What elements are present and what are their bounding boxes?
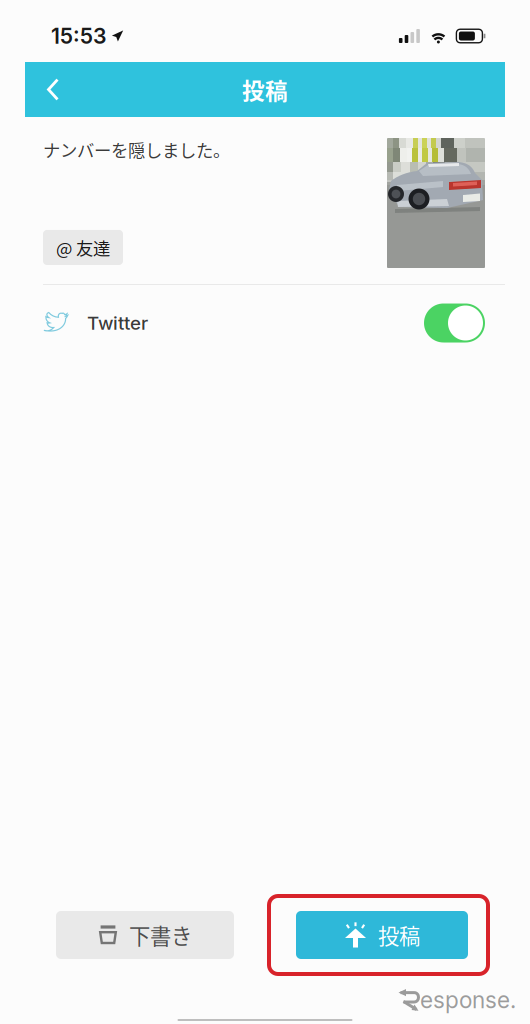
staticText: Twitter (87, 312, 148, 334)
button[interactable]: 下書き (56, 911, 234, 959)
staticText: 投稿 (378, 920, 420, 950)
button[interactable]: @ 友達 (43, 230, 123, 265)
staticText: 15:53 (51, 23, 107, 49)
staticText: 下書き (129, 920, 192, 950)
staticText: 投稿 (242, 73, 288, 106)
button[interactable]: 投稿 (296, 911, 468, 959)
button[interactable]: Twitter sharing toggle, on (424, 303, 485, 342)
staticText: ナンバーを隠しました。 (43, 137, 230, 162)
staticText: @ 友達 (56, 235, 110, 260)
staticText: esponse. (420, 986, 516, 1014)
button[interactable]: Back (25, 62, 81, 117)
